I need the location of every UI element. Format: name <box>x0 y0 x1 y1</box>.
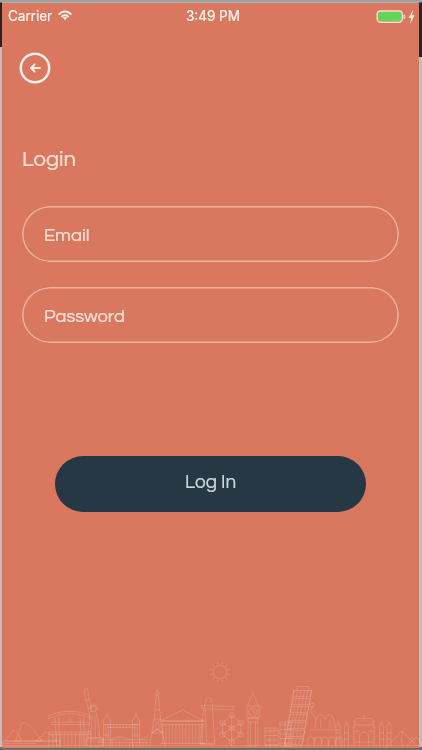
staticText: Carrier <box>8 8 53 24</box>
button[interactable]: Back <box>19 52 51 84</box>
staticText: 3:49 PM <box>186 8 240 24</box>
button[interactable]: Log In <box>55 456 366 512</box>
staticText: Email <box>44 226 90 245</box>
staticText: Log In <box>185 472 237 492</box>
staticText: Password <box>44 307 125 326</box>
button[interactable]: Email <box>22 206 399 262</box>
staticText: Login <box>22 148 76 171</box>
button[interactable]: Password <box>22 287 399 343</box>
